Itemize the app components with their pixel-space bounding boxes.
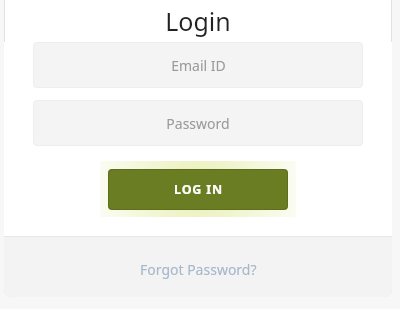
staticText: Password bbox=[166, 114, 230, 133]
staticText: LOG IN bbox=[174, 181, 223, 198]
staticText: Login bbox=[165, 4, 231, 38]
button[interactable]: Email ID bbox=[33, 42, 363, 88]
button[interactable]: Forgot Password? bbox=[134, 258, 263, 281]
staticText: Forgot Password? bbox=[140, 260, 257, 279]
button[interactable]: LOG IN bbox=[108, 169, 288, 210]
staticText: Email ID bbox=[171, 56, 226, 75]
button[interactable]: Password bbox=[33, 100, 363, 146]
